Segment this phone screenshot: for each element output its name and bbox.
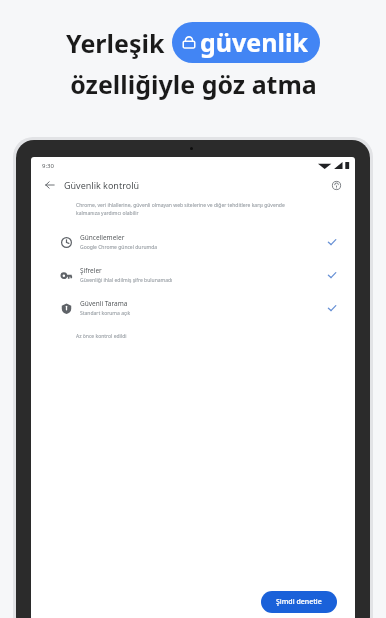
staticText: özelliğiyle göz atma [70,67,317,101]
staticText: Güvenliği ihlal edilmiş şifre bulunamadı [80,277,173,284]
staticText: 9:30 [42,162,54,170]
staticText: Güncellemeler [80,233,125,242]
staticText: Az önce kontrol edildi [76,333,127,340]
staticText: Google Chrome güncel durumda [80,244,158,251]
button[interactable]: Yardım [328,177,344,193]
staticText: Chrome, veri ihlallerine, güvenli olmaya… [76,202,285,217]
button[interactable]: Şifreler [31,264,355,286]
button[interactable]: Geri [42,177,58,193]
staticText: Güvenli Tarama [80,299,128,308]
staticText: Şimdi denetle [276,597,322,607]
staticText: güvenlik [200,25,308,59]
button[interactable]: Şimdi denetle [261,591,337,613]
button[interactable]: Güncellemeler [31,231,355,253]
staticText: Yerleşik [66,26,165,60]
button[interactable]: Güvenli Tarama [31,297,355,319]
staticText: Güvenlik kontrolü [64,179,140,191]
staticText: Şifreler [80,266,102,275]
staticText: Standart koruma açık [80,310,131,317]
